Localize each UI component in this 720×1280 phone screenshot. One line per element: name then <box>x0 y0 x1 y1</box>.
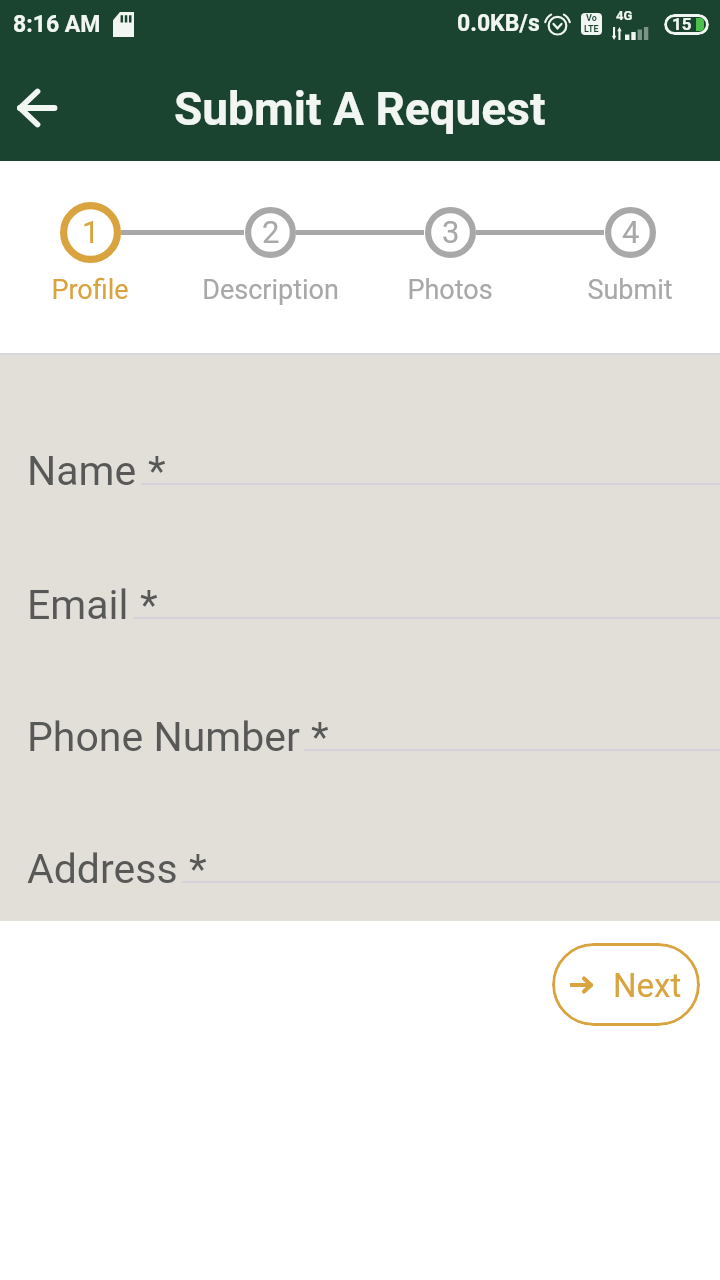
staticText: * <box>148 447 166 495</box>
staticText: 0.0KB/s <box>457 10 540 37</box>
staticText: Submit <box>587 274 673 306</box>
button[interactable]: Back <box>9 80 65 136</box>
staticText: 3 <box>442 214 460 250</box>
staticText: Vo <box>586 13 597 24</box>
staticText: Name <box>27 447 137 495</box>
button[interactable]: Next <box>552 943 700 1026</box>
staticText: Email <box>27 581 129 629</box>
button[interactable]: 3 <box>360 161 540 306</box>
button[interactable]: Address <box>0 751 720 883</box>
staticText: * <box>140 581 158 629</box>
staticText: 2 <box>262 214 280 250</box>
staticText: * <box>311 713 329 761</box>
staticText: 8:16 AM <box>13 11 101 38</box>
staticText: 15 <box>672 14 692 34</box>
staticText: Address <box>27 845 178 893</box>
staticText: Next <box>613 966 682 1005</box>
button[interactable]: 1 <box>0 161 180 306</box>
staticText: Profile <box>51 274 129 306</box>
staticText: Phone Number <box>27 713 300 761</box>
staticText: LTE <box>584 24 599 35</box>
button[interactable]: 4 <box>540 161 720 306</box>
staticText: Description <box>202 274 339 306</box>
staticText: 4G <box>616 8 633 23</box>
button[interactable]: 2 <box>180 161 360 306</box>
button[interactable]: Phone Number <box>0 619 720 751</box>
staticText: 1 <box>82 214 100 250</box>
button[interactable]: Email <box>0 485 720 619</box>
staticText: * <box>189 845 207 893</box>
staticText: Photos <box>407 274 493 306</box>
staticText: Submit A Request <box>174 82 546 136</box>
staticText: 4 <box>622 214 640 250</box>
button[interactable]: Name <box>0 355 720 485</box>
